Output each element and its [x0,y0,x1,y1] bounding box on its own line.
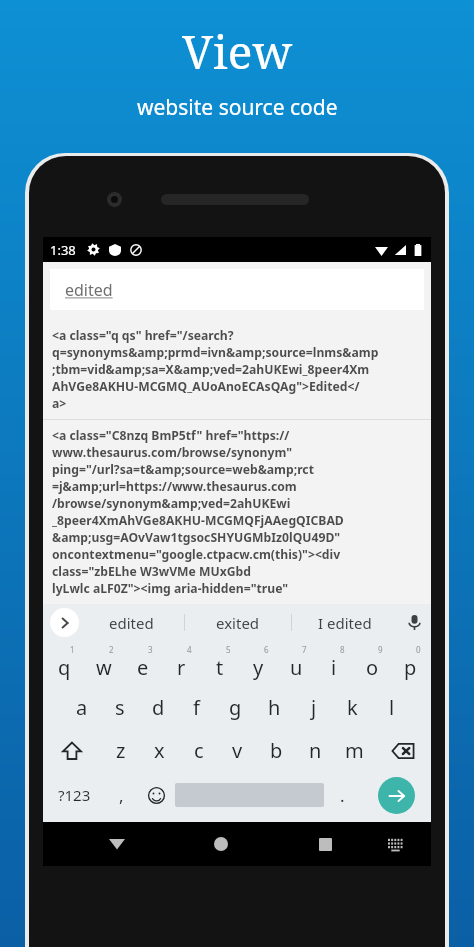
staticText: s [115,694,125,721]
staticText: j [311,694,317,721]
staticText: o [366,654,379,681]
staticText: g [229,694,242,721]
staticText: www.thesaurus.com/browse/synonym" [52,444,293,461]
button[interactable]: 5 [201,641,239,685]
button[interactable]: 1 [45,641,84,685]
button[interactable]: Switch keyboard [378,827,412,861]
button[interactable]: Voice input [398,604,431,641]
staticText: lyLwlc aLF0Z"><img aria-hidden="true" [52,580,289,597]
button[interactable]: I edited [292,604,398,641]
button[interactable]: 2 [84,641,123,685]
button[interactable]: Emoji [138,772,175,818]
staticText: ping="/url?sa=t&amp;source=web&amp;rct [52,461,314,478]
button[interactable]: 0 [391,641,429,685]
button[interactable]: edited [50,269,424,310]
staticText: d [152,694,165,721]
staticText: 4 [187,644,192,655]
button[interactable]: Shift [43,729,101,772]
staticText: t [216,654,224,681]
button[interactable]: ?123 [43,772,105,818]
staticText: k [347,694,358,721]
staticText: 1:38 [50,241,76,259]
button[interactable]: j [294,685,333,729]
staticText: &amp;usg=AOvVaw1tgsocSHYUGMbIz0lQU49D" [52,529,341,546]
staticText: View [182,20,293,83]
staticText: q=synonyms&amp;prmd=ivn&amp;source=lnms&… [52,344,379,361]
button[interactable]: , [105,772,138,818]
staticText: b [270,737,283,764]
staticText: ;tbm=vid&amp;sa=X&amp;ved=2ahUKEwi_8peer… [52,361,370,378]
button[interactable]: c [179,729,218,772]
staticText: p [404,654,417,681]
staticText: r [177,654,186,681]
staticText: l [389,694,395,721]
staticText: edited [65,279,113,301]
staticText: edited [109,613,154,633]
button[interactable]: Enter [378,777,415,814]
button[interactable]: s [101,685,139,729]
button[interactable]: a [63,685,101,729]
button[interactable]: 6 [239,641,277,685]
button[interactable]: Back [100,827,134,861]
button[interactable]: d [139,685,177,729]
staticText: _8peer4XmAhVGe8AKHU-MCGMQFjAAegQICBAD [52,512,344,529]
staticText: <a class="C8nzq BmP5tf" href="https:// [52,427,290,444]
staticText: f [193,694,200,721]
button[interactable]: g [216,685,255,729]
button[interactable]: f [177,685,216,729]
staticText: 0 [416,644,421,655]
button[interactable]: 7 [277,641,315,685]
staticText: <a class="q qs" href="/search? [52,327,234,344]
button[interactable]: m [335,729,374,772]
button[interactable]: 4 [162,641,201,685]
button[interactable]: z [101,729,140,772]
staticText: /browse/synonym&amp;ved=2ahUKEwi [52,495,291,512]
staticText: w [96,654,112,681]
button[interactable]: edited [79,604,184,641]
staticText: exited [216,613,260,633]
button[interactable]: 9 [353,641,391,685]
staticText: i [331,654,337,681]
staticText: . [340,784,345,807]
staticText: 3 [148,644,153,655]
staticText: class="zbELhe W3wVMe MUxGbd [52,563,252,580]
staticText: v [232,737,243,764]
button[interactable]: Recents [308,827,342,861]
button[interactable]: x [140,729,179,772]
staticText: z [116,737,126,764]
staticText: , [119,784,124,807]
staticText: oncontextmenu="google.ctpacw.cm(this)"><… [52,546,341,563]
button[interactable]: k [333,685,372,729]
staticText: =j&amp;url=https://www.thesaurus.com [52,478,297,495]
staticText: a> [52,395,67,412]
button[interactable]: . [324,772,361,818]
button[interactable]: b [257,729,296,772]
staticText: ?123 [58,785,91,805]
staticText: 9 [378,644,383,655]
staticText: u [290,654,303,681]
button[interactable]: 3 [123,641,162,685]
staticText: m [345,737,364,764]
staticText: n [309,737,322,764]
staticText: 8 [340,644,345,655]
button[interactable]: 8 [315,641,353,685]
button[interactable]: Backspace [374,729,431,772]
button[interactable]: h [255,685,294,729]
staticText: e [137,654,149,681]
staticText: h [268,694,281,721]
staticText: I edited [318,613,372,633]
button[interactable]: n [296,729,335,772]
staticText: 1 [70,644,75,655]
button[interactable]: l [372,685,411,729]
staticText: website source code [137,93,338,122]
staticText: 6 [264,644,269,655]
button[interactable]: Home [204,827,238,861]
staticText: 2 [109,644,114,655]
staticText: a [76,694,88,721]
button[interactable]: More suggestions [50,608,79,637]
button[interactable]: v [218,729,257,772]
staticText: x [154,737,165,764]
staticText: c [194,737,204,764]
button[interactable]: exited [185,604,291,641]
